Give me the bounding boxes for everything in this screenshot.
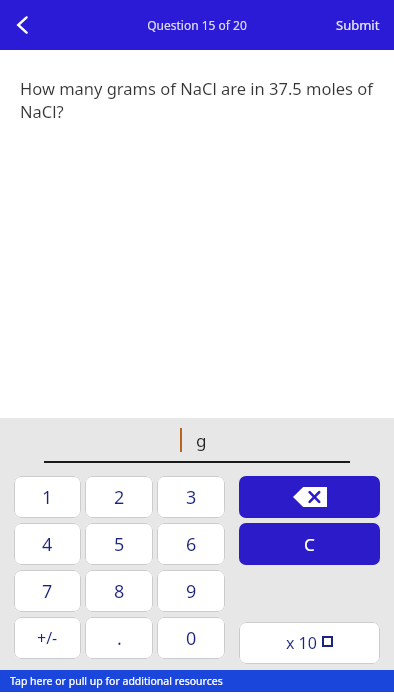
staticText: 2 bbox=[114, 485, 125, 510]
staticText: Question 15 of 20 bbox=[147, 17, 247, 33]
button[interactable]: 2 bbox=[85, 476, 153, 518]
staticText: +/- bbox=[37, 627, 58, 649]
button[interactable]: Submit bbox=[322, 4, 394, 46]
button[interactable]: 5 bbox=[85, 523, 153, 565]
staticText: 0 bbox=[186, 626, 197, 651]
button[interactable]: 0 bbox=[157, 617, 225, 659]
button[interactable]: 9 bbox=[157, 570, 225, 612]
staticText: g bbox=[196, 429, 207, 452]
staticText: C bbox=[304, 533, 315, 556]
button[interactable]: Back bbox=[0, 2, 46, 48]
button[interactable]: 7 bbox=[14, 570, 81, 612]
staticText: Submit bbox=[336, 16, 380, 34]
staticText: 1 bbox=[42, 485, 53, 510]
button[interactable]: . bbox=[85, 617, 153, 659]
button[interactable]: 3 bbox=[157, 476, 225, 518]
button[interactable]: +/- bbox=[14, 617, 81, 659]
button[interactable]: C bbox=[239, 523, 380, 565]
button[interactable]: Backspace bbox=[239, 476, 380, 518]
button[interactable]: 8 bbox=[85, 570, 153, 612]
staticText: 6 bbox=[186, 532, 197, 557]
button[interactable]: 6 bbox=[157, 523, 225, 565]
staticText: 8 bbox=[114, 579, 125, 604]
staticText: 4 bbox=[42, 532, 53, 557]
staticText: How many grams of NaCl are in 37.5 moles… bbox=[20, 77, 376, 123]
staticText: 9 bbox=[186, 579, 197, 604]
staticText: . bbox=[117, 626, 122, 651]
button[interactable]: 1 bbox=[14, 476, 81, 518]
staticText: 7 bbox=[42, 579, 53, 604]
staticText: 3 bbox=[186, 485, 197, 510]
button[interactable]: x 10 bbox=[239, 622, 380, 664]
button[interactable]: 4 bbox=[14, 523, 81, 565]
staticText: 5 bbox=[114, 532, 125, 557]
staticText: Tap here or pull up for additional resou… bbox=[10, 674, 223, 688]
button[interactable]: Tap here or pull up for additional resou… bbox=[0, 670, 394, 692]
staticText: x 10 bbox=[286, 632, 317, 654]
